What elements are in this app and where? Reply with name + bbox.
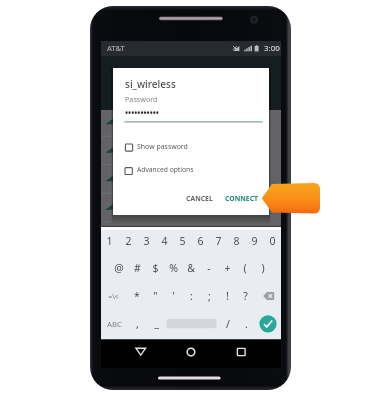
staticText: ( [243,261,247,275]
button[interactable]: , [128,311,146,337]
button[interactable]: Enter [259,315,277,333]
staticText: + [224,261,231,275]
button[interactable]: 6 [191,228,209,254]
button[interactable]: * [128,283,146,309]
staticText: ) [261,261,265,275]
button[interactable]: 1 [100,228,118,254]
button[interactable]: & [182,255,200,281]
staticText: CANCEL [186,194,213,203]
button[interactable]: + [218,255,236,281]
staticText: 0 [269,234,276,248]
button[interactable]: CANCEL [181,191,208,200]
button[interactable]: ) [254,255,272,281]
staticText: @ [114,261,124,275]
staticText: AT&T [107,43,125,53]
staticText: 8 [233,234,240,248]
staticText: % [169,261,178,275]
button[interactable]: 3 [137,228,155,254]
staticText: * [134,289,140,303]
staticText: 4 [161,234,168,248]
button[interactable]: ! [218,283,236,309]
staticText: , [136,317,139,331]
button[interactable]: ' [164,283,182,309]
staticText: 6 [197,234,204,248]
staticText: / [226,317,230,331]
button[interactable]: " [146,283,164,309]
button[interactable]: - [200,255,218,281]
button[interactable]: # [128,255,146,281]
button[interactable]: ABC [104,311,124,337]
staticText: ? [243,289,248,303]
button[interactable]: 0 [263,228,281,254]
button[interactable]: $ [146,255,164,281]
staticText: 5 [179,234,186,248]
staticText: $ [152,261,159,275]
staticText: ! [226,289,229,303]
button[interactable]: 2 [119,228,137,254]
staticText: ABC [107,319,122,329]
staticText: _ [154,316,159,330]
staticText: ; [208,289,211,303]
staticText: 7 [215,234,222,248]
staticText: 3:00 [264,43,280,54]
button[interactable]: ( [236,255,254,281]
button[interactable]: 9 [245,228,263,254]
button[interactable]: / [219,311,237,337]
staticText: Show password [137,142,188,151]
button[interactable]: CONNECT [220,191,253,200]
button[interactable]: @ [110,255,128,281]
staticText: : [190,289,193,303]
button[interactable]: 8 [227,228,245,254]
button[interactable]: 5 [173,228,191,254]
staticText: ' [172,289,175,303]
staticText: . [245,317,248,331]
button[interactable]: ; [200,283,218,309]
staticText: Password [125,94,158,104]
staticText: " [153,289,158,303]
button[interactable]: _ [147,310,165,336]
button[interactable]: 4 [155,228,173,254]
button[interactable]: . [237,311,255,337]
button[interactable]: % [164,255,182,281]
button[interactable]: ? [236,283,254,309]
staticText: # [134,261,141,275]
button[interactable]: Advanced options [125,161,245,177]
staticText: - [207,261,211,275]
staticText: CONNECT [225,194,258,203]
staticText: =\< [108,292,119,301]
staticText: 1 [106,234,113,248]
staticText: ••••••••••• [125,107,159,118]
button[interactable]: Backspace [258,285,280,307]
staticText: & [187,261,195,275]
staticText: 2 [125,234,132,248]
button[interactable]: 7 [209,228,227,254]
staticText: 9 [251,234,258,248]
button[interactable]: : [182,283,200,309]
staticText: si_wireless [125,77,176,91]
button[interactable]: Space [167,319,217,329]
button[interactable]: Show password [125,138,245,154]
staticText: Advanced options [137,165,194,174]
staticText: 3 [143,234,150,248]
button[interactable]: =\< [102,283,124,309]
